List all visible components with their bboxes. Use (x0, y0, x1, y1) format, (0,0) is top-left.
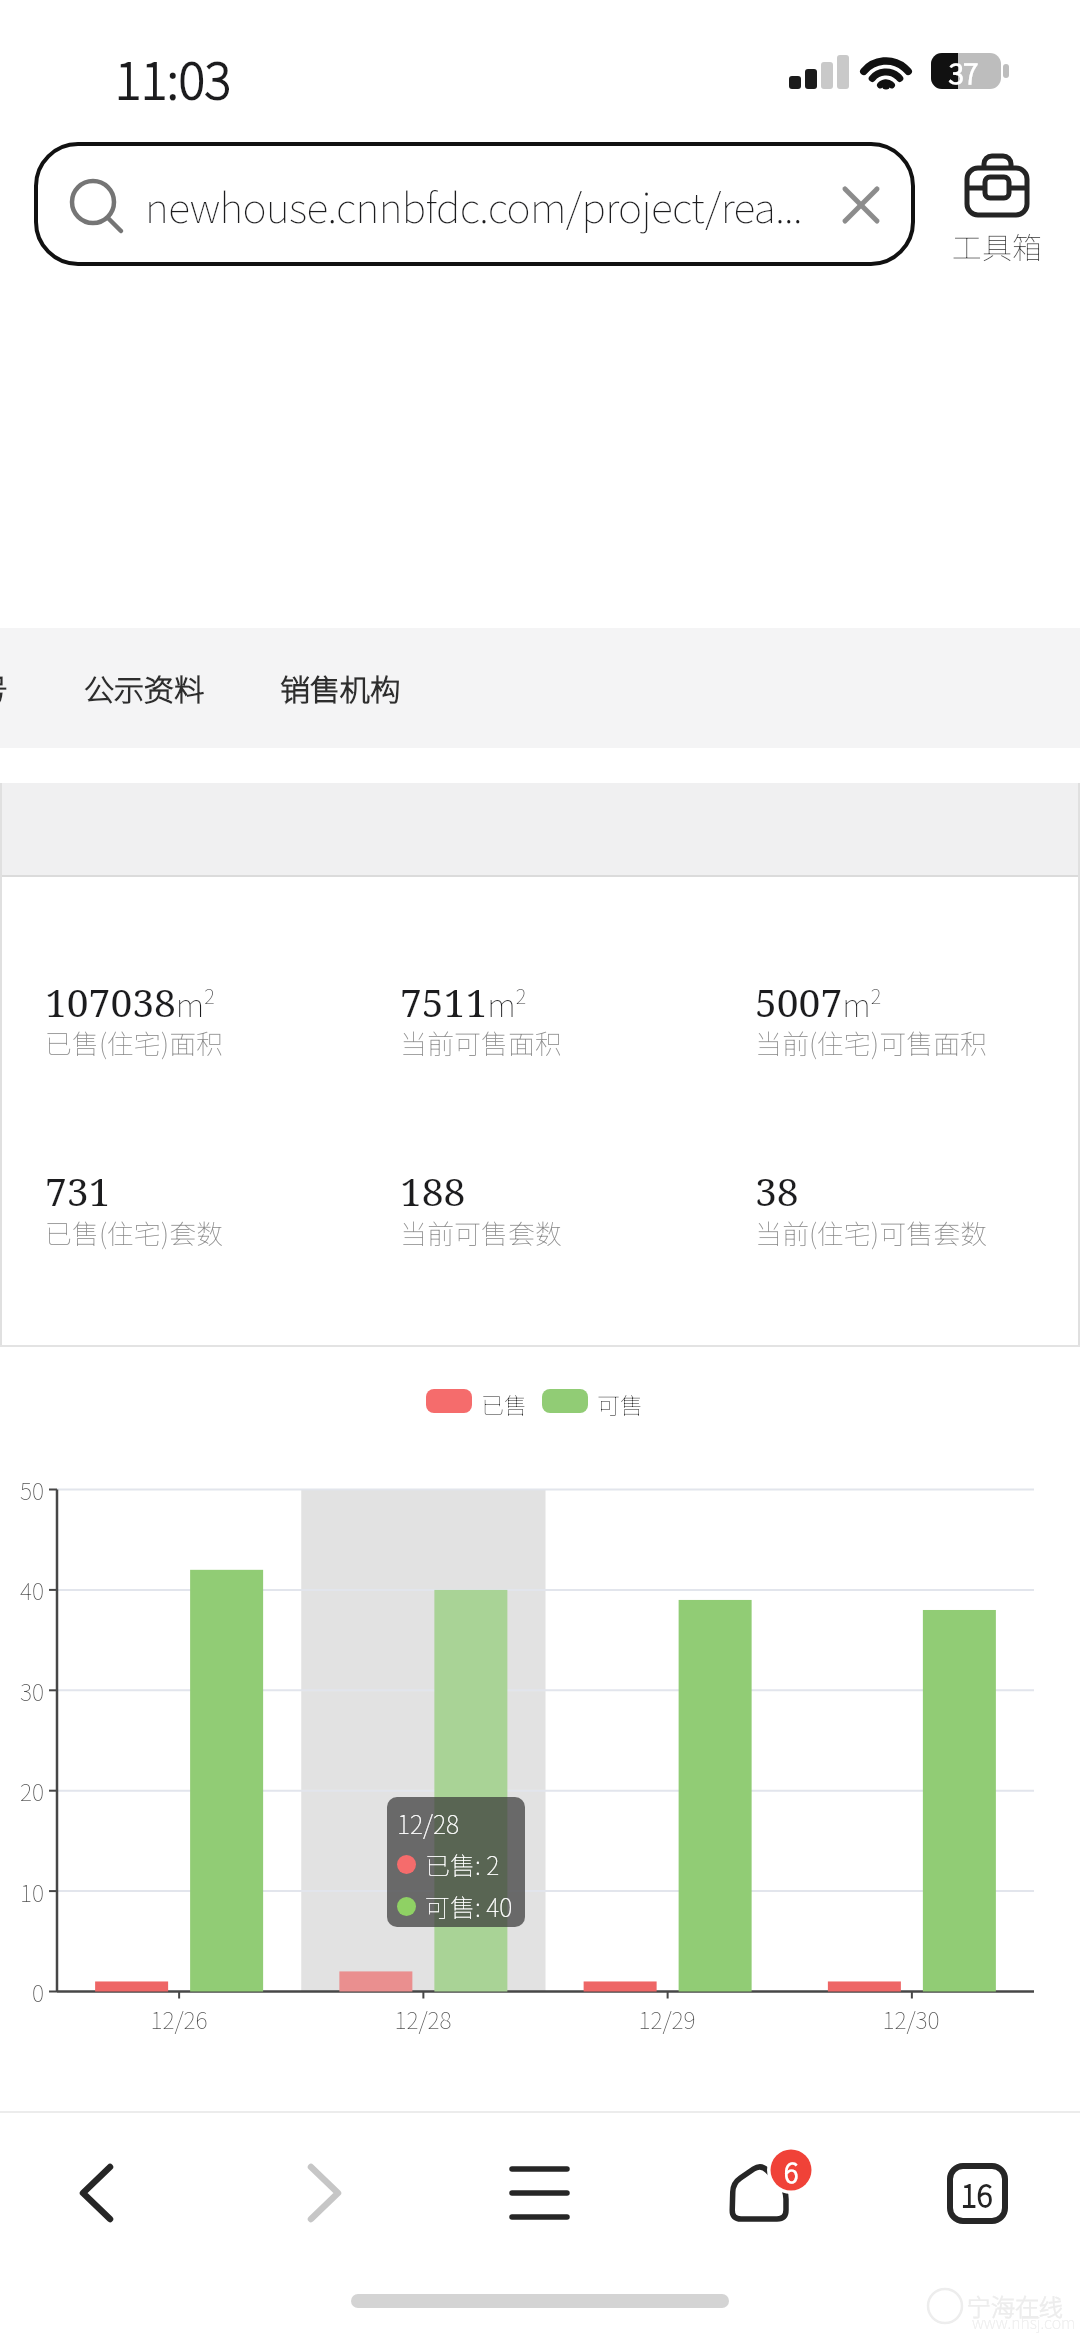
staticText: 0 (32, 1975, 44, 2008)
staticText: 可售: 40 (425, 1888, 513, 1924)
staticText: 工具箱 (952, 224, 1042, 267)
staticText: 已售(住宅)面积 (45, 1023, 224, 1062)
staticText: 731 (45, 1164, 111, 1217)
staticText: 11:03 (115, 41, 231, 113)
staticText: 37 (949, 52, 979, 93)
staticText: 已售: 2 (425, 1846, 500, 1882)
staticText: 已售 (481, 1387, 527, 1420)
staticText: newhouse.cnnbfdc.com/project/rea... (145, 175, 802, 234)
staticText: 7511m2 (400, 975, 527, 1028)
staticText: 11:03 (115, 41, 231, 113)
staticText: 号 (0, 666, 8, 709)
staticText: 6 (784, 2152, 799, 2191)
staticText: 12/29 (638, 2002, 696, 2035)
staticText: 5007m2 (755, 975, 882, 1028)
staticText: 销售机构 (280, 666, 400, 709)
staticText: 10 (20, 1875, 44, 1908)
button[interactable] (36, 2133, 156, 2253)
button[interactable] (260, 648, 420, 728)
button[interactable] (917, 2133, 1037, 2253)
staticText: 30 (20, 1674, 44, 1707)
staticText: 公示资料 (84, 666, 204, 709)
button[interactable]: newhouse.cnnbfdc.com/project/rea... (34, 142, 915, 266)
staticText: 12/28 (394, 2002, 452, 2035)
staticText: 50 (20, 1473, 44, 1506)
button[interactable] (537, 1380, 641, 1420)
staticText: 当前可售套数 (400, 1213, 562, 1252)
button[interactable] (64, 648, 224, 728)
staticText: 当前可售面积 (400, 1023, 562, 1062)
staticText: 12/30 (882, 2002, 940, 2035)
staticText: 已售(住宅)套数 (45, 1213, 224, 1252)
staticText: 20 (20, 1774, 44, 1807)
staticText: 16 (961, 2172, 993, 2215)
staticText: 12/28 (397, 1805, 460, 1841)
staticText: 当前(住宅)可售面积 (755, 1023, 988, 1062)
staticText: 188 (400, 1164, 466, 1217)
button[interactable] (264, 2133, 384, 2253)
staticText: 38 (755, 1164, 799, 1217)
button[interactable] (479, 2133, 599, 2253)
button[interactable] (699, 2133, 819, 2253)
staticText: 公示资料 (84, 666, 204, 709)
staticText: 12/26 (150, 2002, 208, 2035)
staticText: 销售机构 (280, 666, 400, 709)
staticText: www.nhsj.com (972, 2310, 1076, 2333)
staticText: 宁海在线 (967, 2288, 1063, 2323)
staticText: 当前(住宅)可售套数 (755, 1213, 988, 1252)
staticText: 40 (20, 1573, 44, 1606)
button[interactable] (420, 1380, 528, 1420)
button[interactable] (945, 146, 1050, 271)
staticText: 16 (961, 2172, 993, 2215)
staticText: 107038m2 (45, 975, 215, 1028)
staticText: 可售 (597, 1387, 643, 1420)
staticText: 号 (0, 666, 8, 709)
staticText: 37 (949, 52, 979, 93)
staticText: 6 (784, 2152, 799, 2191)
